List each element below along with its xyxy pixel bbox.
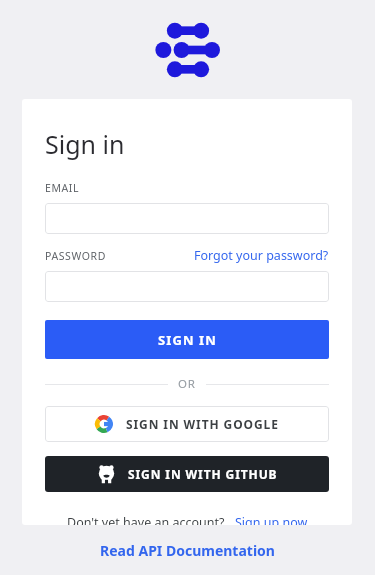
button[interactable] <box>45 271 329 302</box>
staticText: Sign in <box>45 127 125 161</box>
staticText: SIGN IN WITH GOOGLE <box>126 416 279 432</box>
staticText: Sign up now <box>235 514 308 525</box>
staticText: Forgot your password? <box>194 247 329 264</box>
staticText: PASSWORD <box>45 249 106 263</box>
other: App logo <box>156 22 220 78</box>
button[interactable]: SIGN IN WITH GOOGLE <box>45 406 329 442</box>
button[interactable]: Forgot your password? <box>194 247 329 264</box>
button[interactable] <box>45 203 329 234</box>
staticText: Read API Documentation <box>100 541 275 560</box>
button[interactable]: Sign up now <box>235 514 308 525</box>
staticText: EMAIL <box>45 181 80 195</box>
staticText: SIGN IN <box>158 331 217 349</box>
staticText: OR <box>178 376 196 392</box>
button[interactable]: SIGN IN WITH GITHUB <box>45 456 329 492</box>
button[interactable]: Read API Documentation <box>100 541 275 560</box>
staticText: SIGN IN WITH GITHUB <box>128 466 278 482</box>
button[interactable]: SIGN IN <box>45 320 329 359</box>
staticText: Don't yet have an account? <box>67 514 225 525</box>
